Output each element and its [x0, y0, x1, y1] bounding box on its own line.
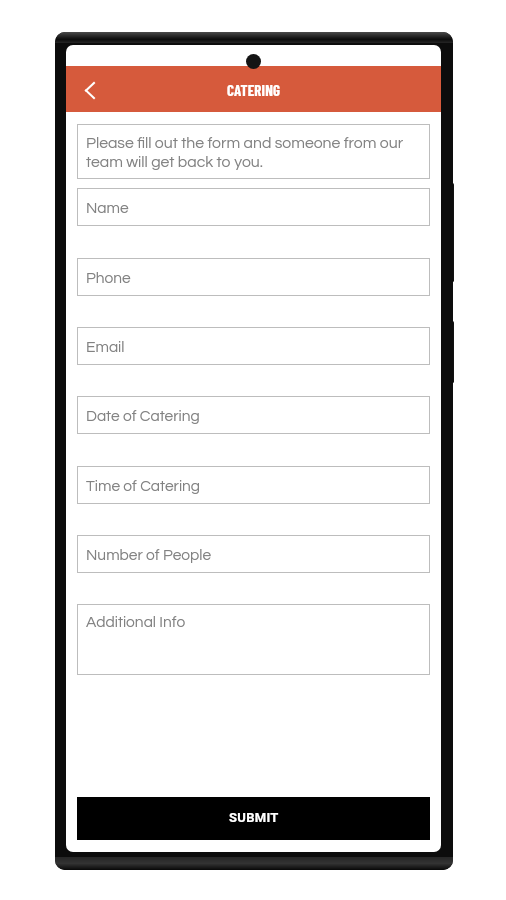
- button[interactable]: Number of People: [77, 535, 430, 573]
- staticText: Phone: [86, 270, 131, 286]
- staticText: SUBMIT: [229, 810, 279, 825]
- button[interactable]: Phone: [77, 258, 430, 296]
- staticText: Additional Info: [86, 614, 186, 630]
- button[interactable]: Email: [77, 327, 430, 365]
- staticText: Time of Catering: [86, 478, 201, 494]
- button[interactable]: Additional Info: [77, 604, 430, 675]
- staticText: CATERING: [227, 81, 281, 99]
- staticText: Please fill out the form and someone fro…: [86, 135, 426, 170]
- button[interactable]: Date of Catering: [77, 396, 430, 434]
- staticText: Number of People: [86, 547, 212, 563]
- button[interactable]: Name: [77, 188, 430, 226]
- staticText: Date of Catering: [86, 408, 200, 424]
- button[interactable]: SUBMIT: [77, 797, 430, 840]
- staticText: Email: [86, 339, 125, 355]
- staticText: Name: [86, 200, 129, 216]
- button[interactable]: Time of Catering: [77, 466, 430, 504]
- button[interactable]: Back: [66, 66, 108, 112]
